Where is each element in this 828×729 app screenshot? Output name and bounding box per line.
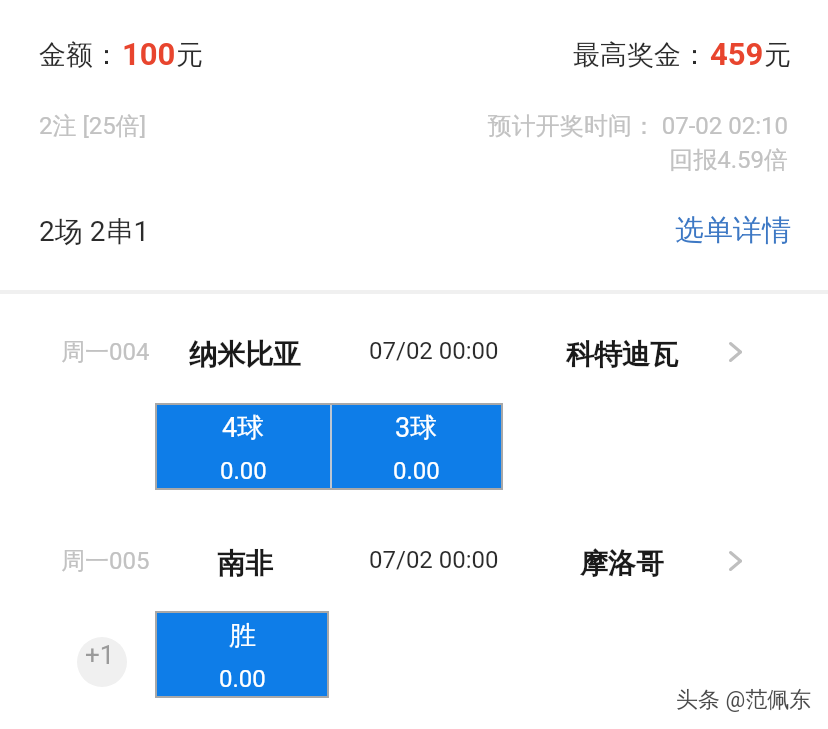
button[interactable]: 周一004 [0,342,828,394]
staticText: 2注 [25倍] [39,111,147,141]
staticText: 科特迪瓦 [566,337,678,372]
staticText: 头条 @范佩东 [675,687,811,715]
staticText: 预计开奖时间： 07-02 02:10 [0,111,788,141]
button[interactable]: 胜 [157,613,327,696]
staticText: 头条 @范佩东 [675,686,811,714]
staticText: 4球 [222,411,265,445]
staticText: +1 [85,640,115,670]
staticText: 最高奖金： [573,38,708,72]
staticText: 金额： [39,38,120,72]
staticText: 周一004 [61,337,150,367]
button[interactable]: Open match details [714,326,756,378]
staticText: 头条 @范佩东 [676,686,812,714]
staticText: 元 [764,38,791,72]
staticText: 南非 [217,546,273,581]
staticText: 周一005 [61,546,150,576]
staticText: 0.00 [220,457,267,485]
staticText: 头条 @范佩东 [677,686,813,714]
button[interactable]: One more selection [77,637,127,687]
button[interactable]: 3球 [332,405,501,488]
staticText: 元 [176,38,203,72]
staticText: 胜 [229,619,256,653]
staticText: 摩洛哥 [580,546,664,581]
staticText: 3球 [395,411,438,445]
staticText: 0.00 [219,665,266,693]
button[interactable]: 周一005 [0,551,828,603]
staticText: 头条 @范佩东 [676,687,812,715]
staticText: 头条 @范佩东 [675,685,811,713]
staticText: 选单详情 [675,212,791,249]
staticText: 回报4.59倍 [0,145,788,175]
button[interactable]: 选单详情 [667,204,799,257]
staticText: 07/02 00:00 [369,337,499,365]
staticText: 07/02 00:00 [369,546,499,574]
staticText: 头条 @范佩东 [677,687,813,715]
staticText: 2场 2串1 [39,214,150,249]
staticText: 头条 @范佩东 [676,685,812,713]
staticText: 0.00 [393,457,440,485]
staticText: 纳米比亚 [189,337,301,372]
button[interactable]: Open match details [714,535,756,587]
staticText: 100 [122,36,176,72]
staticText: 459 [710,36,764,72]
staticText: 头条 @范佩东 [677,685,813,713]
button[interactable]: 4球 [157,405,330,488]
